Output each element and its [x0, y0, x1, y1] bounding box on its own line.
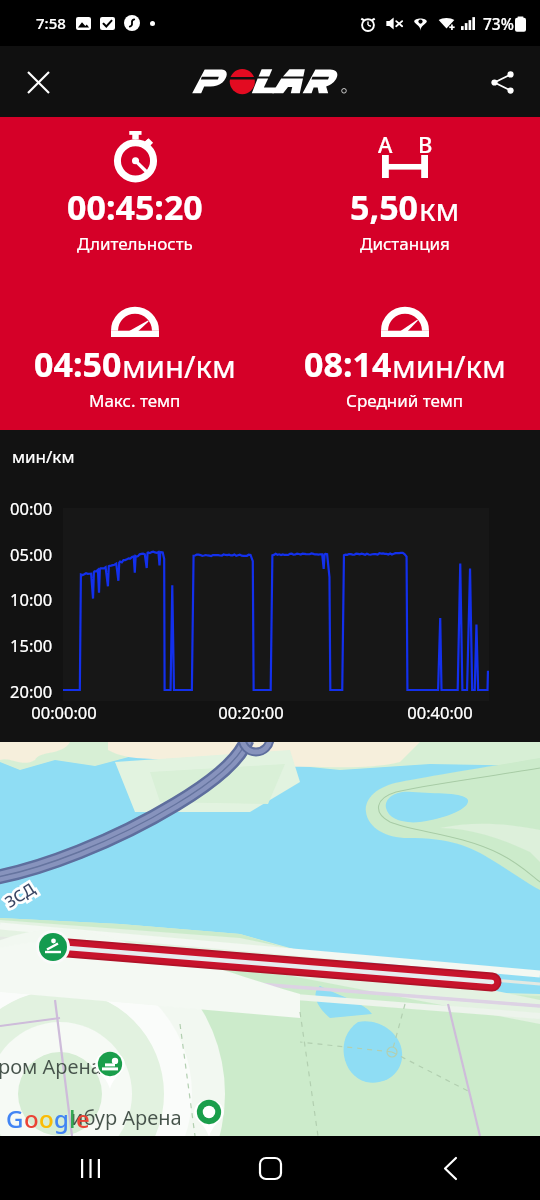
button[interactable]: 04:50	[0, 274, 270, 412]
staticText: 00:20:00	[218, 701, 284, 723]
button[interactable]: 00:45:20	[0, 117, 270, 255]
staticText: l	[69, 1102, 76, 1135]
staticText: o	[24, 1102, 39, 1135]
staticText: e	[76, 1102, 90, 1135]
button[interactable]: 08:14	[270, 274, 540, 412]
staticText: Макс. темп	[89, 389, 181, 412]
staticText: ЗСД	[1, 877, 39, 913]
staticText: 5,50	[350, 184, 419, 230]
staticText: мин/км	[392, 345, 506, 387]
staticText: Средний темп	[346, 389, 464, 412]
staticText: ибур Арена	[71, 1104, 182, 1131]
staticText: Дистанция	[360, 232, 450, 255]
button[interactable]: Home	[180, 1136, 360, 1200]
staticText: o	[39, 1102, 54, 1135]
staticText: 00:00:00	[31, 701, 97, 723]
staticText: 7:58	[36, 13, 66, 33]
button[interactable]: Back	[360, 1136, 540, 1200]
staticText: Длительность	[77, 232, 193, 255]
staticText: B	[418, 129, 433, 159]
staticText: км	[419, 188, 460, 230]
button[interactable]: Share	[478, 58, 526, 106]
staticText: ром Арена	[0, 1053, 102, 1080]
staticText: 20:00	[10, 680, 53, 702]
staticText: 73%	[483, 13, 514, 34]
button[interactable]: Close	[14, 58, 62, 106]
staticText: 00:00	[10, 497, 53, 519]
staticText: 05:00	[10, 543, 53, 565]
staticText: A	[378, 129, 393, 159]
button[interactable]: A	[270, 117, 540, 255]
staticText: 15:00	[10, 634, 53, 656]
staticText: 00:45:20	[67, 184, 203, 230]
staticText: 08:14	[304, 341, 392, 387]
staticText: G	[6, 1102, 24, 1135]
staticText: 10:00	[10, 588, 53, 610]
staticText: 00:40:00	[407, 701, 473, 723]
staticText: g	[54, 1102, 69, 1135]
button[interactable]: Recent apps	[0, 1136, 180, 1200]
staticText: мин/км	[12, 445, 75, 468]
staticText: 04:50	[34, 341, 122, 387]
staticText: ЗСД	[1, 877, 39, 913]
staticText: мин/км	[122, 345, 236, 387]
